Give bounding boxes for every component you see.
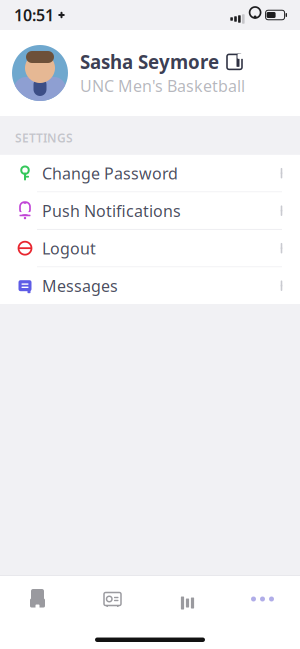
staticText: SETTINGS <box>15 130 73 146</box>
button[interactable]: ID Card <box>75 576 150 622</box>
staticText: 10:51 <box>14 4 54 26</box>
button[interactable]: Edit profile <box>226 53 243 70</box>
button[interactable]: Logout <box>0 230 300 267</box>
button[interactable]: Change Password <box>0 155 300 192</box>
staticText: UNC Men's Basketball <box>80 75 245 96</box>
button[interactable]: More <box>225 576 300 622</box>
staticText: Messages <box>42 275 118 296</box>
button[interactable]: Stats <box>150 576 225 622</box>
button[interactable]: Push Notifications <box>0 192 300 230</box>
staticText: Change Password <box>42 163 178 184</box>
staticText: Push Notifications <box>42 200 181 221</box>
button[interactable]: Messages <box>0 267 300 304</box>
staticText: Sasha Seymore <box>80 49 219 74</box>
staticText: Logout <box>42 238 96 259</box>
button[interactable]: Home <box>0 576 75 622</box>
